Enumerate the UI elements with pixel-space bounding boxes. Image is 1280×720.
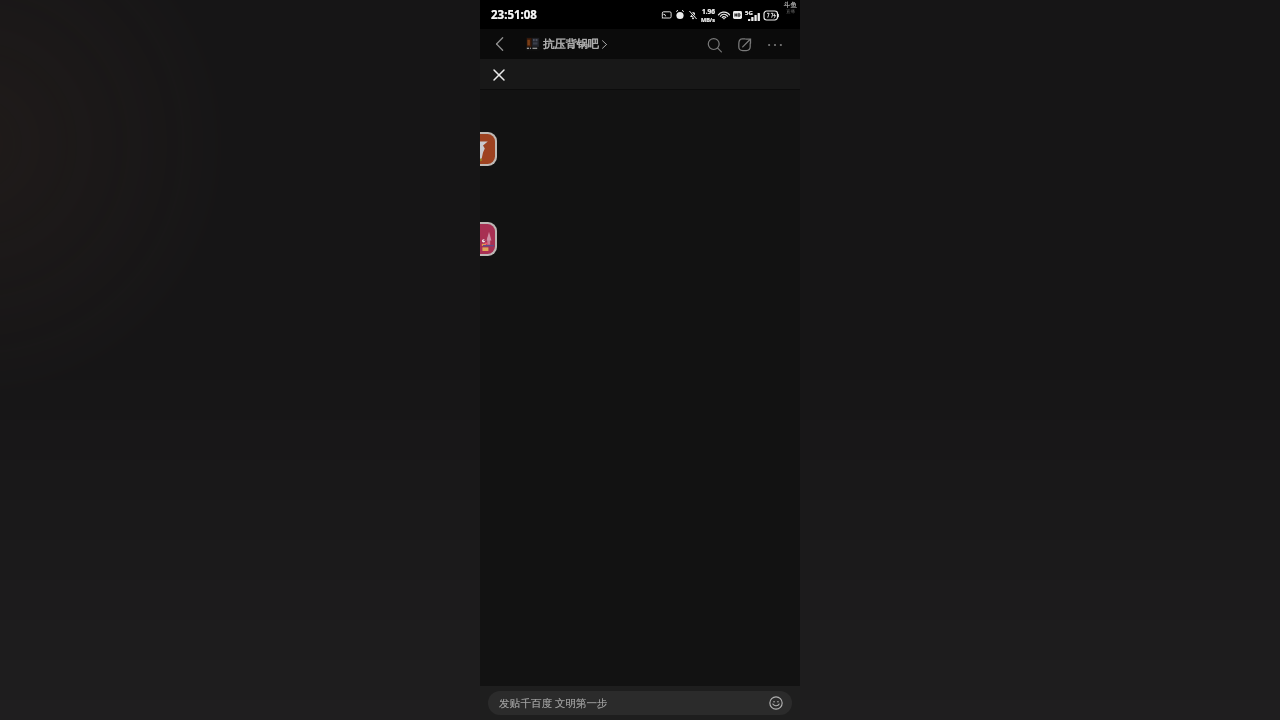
button[interactable]: More options: [762, 32, 787, 57]
button[interactable]: Back: [488, 33, 510, 55]
staticText: MB/s: [701, 16, 715, 23]
staticText: 5G: [745, 9, 753, 17]
staticText: 1.96: [702, 7, 715, 16]
button[interactable]: 发贴千百度 文明第一步: [488, 691, 792, 715]
button[interactable]: Emoji keyboard: [769, 696, 783, 710]
button[interactable]: User avatar: [480, 134, 495, 164]
button[interactable]: Close: [488, 64, 510, 86]
staticText: 发贴千百度 文明第一步: [499, 696, 608, 710]
staticText: 抗压背锅吧: [543, 37, 599, 51]
button[interactable]: Search: [702, 32, 727, 57]
button[interactable]: User avatar: [480, 224, 495, 254]
button[interactable]: Share: [732, 32, 757, 57]
staticText: 23:51:08: [491, 7, 537, 23]
staticText: 斗鱼: [784, 1, 797, 9]
staticText: 直播: [786, 9, 795, 15]
button[interactable]: 抗压背锅吧: [526, 37, 607, 51]
